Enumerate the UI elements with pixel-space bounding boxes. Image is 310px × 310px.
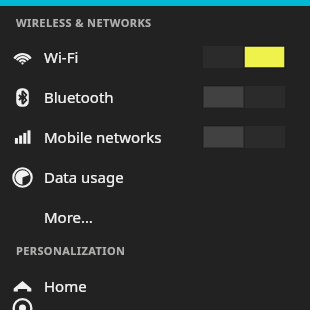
staticText: Bluetooth: [44, 87, 114, 107]
staticText: PERSONALIZATION: [16, 243, 126, 258]
button[interactable]: More…: [0, 197, 310, 236]
staticText: Home: [44, 276, 87, 296]
staticText: Wi-Fi: [44, 47, 79, 67]
button[interactable]: On: [203, 46, 285, 68]
button[interactable]: Bluetooth: [0, 77, 310, 117]
staticText: Data usage: [44, 167, 124, 187]
button[interactable]: Off: [203, 86, 285, 108]
staticText: Mobile networks: [44, 127, 162, 147]
staticText: WIRELESS & NETWORKS: [16, 15, 152, 30]
staticText: More…: [44, 207, 93, 227]
button[interactable]: Home: [0, 266, 310, 306]
button[interactable]: Lock screen: [0, 306, 310, 310]
button[interactable]: Mobile networks: [0, 117, 310, 157]
button[interactable]: Data usage: [0, 157, 310, 197]
button[interactable]: Wi-Fi: [0, 37, 310, 77]
button[interactable]: Off: [203, 126, 285, 148]
